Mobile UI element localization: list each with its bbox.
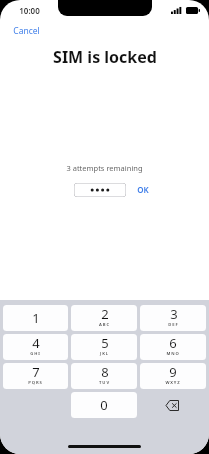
- button[interactable]: 5: [71, 334, 137, 360]
- staticText: DEF: [168, 322, 179, 328]
- staticText: 4: [32, 334, 40, 352]
- staticText: JKL: [100, 351, 109, 357]
- staticText: 8: [101, 363, 109, 381]
- staticText: 1: [32, 309, 40, 327]
- staticText: GHI: [30, 351, 41, 357]
- button[interactable]: 2: [71, 305, 137, 331]
- button[interactable]: 7: [3, 363, 68, 389]
- button[interactable]: 8: [71, 363, 137, 389]
- staticText: 3: [170, 305, 178, 323]
- staticText: 7: [32, 363, 40, 381]
- staticText: TUV: [99, 380, 110, 386]
- button[interactable]: [74, 183, 126, 197]
- button[interactable]: OK: [134, 182, 152, 197]
- staticText: PQRS: [28, 380, 43, 386]
- staticText: 10:00: [19, 5, 40, 16]
- staticText: WXYZ: [165, 380, 181, 386]
- staticText: 0: [100, 396, 108, 414]
- button[interactable]: Delete: [140, 392, 206, 418]
- button[interactable]: 0: [71, 392, 137, 418]
- staticText: 5: [101, 334, 109, 352]
- staticText: 3 attempts remaining: [66, 163, 143, 173]
- button[interactable]: 4: [3, 334, 68, 360]
- staticText: MNO: [166, 351, 180, 357]
- button[interactable]: 9: [140, 363, 206, 389]
- staticText: 9: [169, 363, 177, 381]
- staticText: Cancel: [13, 25, 40, 37]
- button[interactable]: 3: [140, 305, 206, 331]
- staticText: 6: [169, 334, 177, 352]
- button[interactable]: Cancel: [9, 23, 44, 39]
- button[interactable]: 6: [140, 334, 206, 360]
- staticText: 2: [101, 305, 109, 323]
- staticText: OK: [137, 184, 149, 195]
- button[interactable]: 1: [3, 305, 68, 331]
- staticText: SIM is locked: [53, 46, 157, 68]
- staticText: ABC: [99, 322, 110, 328]
